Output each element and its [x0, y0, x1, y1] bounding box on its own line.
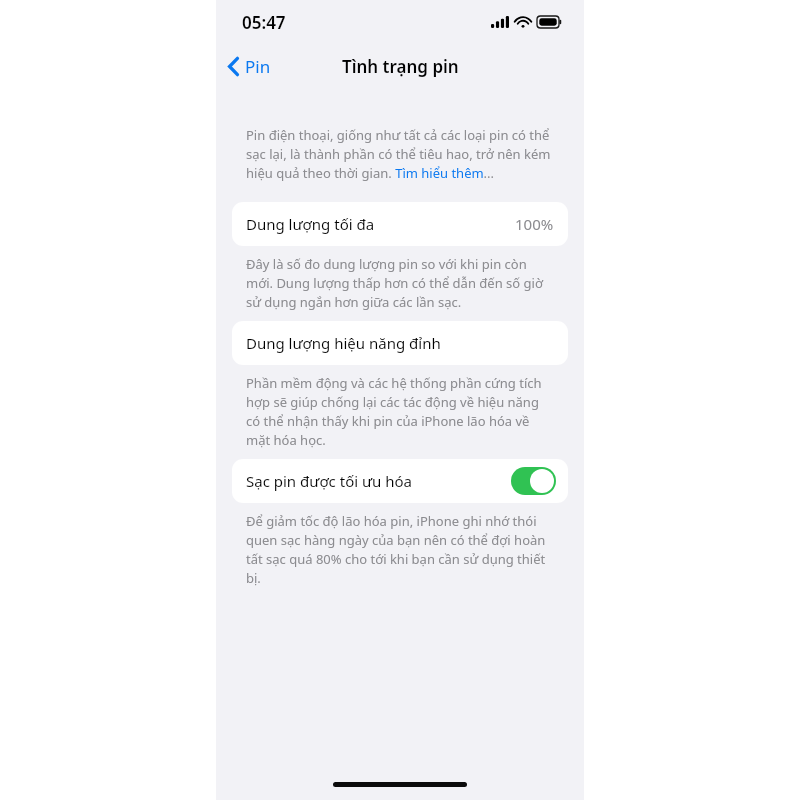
- staticText: 100%: [515, 214, 554, 234]
- staticText: Sạc pin được tối ưu hóa: [246, 471, 413, 491]
- button[interactable]: Sạc pin được tối ưu hóa: [232, 459, 568, 503]
- staticText: 05:47: [242, 11, 286, 34]
- button[interactable]: Dung lượng tối đa: [232, 202, 568, 246]
- staticText: Đây là số đo dung lượng pin so với khi p…: [246, 255, 554, 311]
- staticText: Dung lượng hiệu năng đỉnh: [246, 333, 441, 353]
- button[interactable]: Dung lượng hiệu năng đỉnh: [232, 321, 568, 365]
- staticText: Phần mềm động và các hệ thống phần cứng …: [246, 374, 554, 449]
- staticText: Pin điện thoại, giống như tất cả các loạ…: [246, 126, 554, 182]
- staticText: Dung lượng tối đa: [246, 214, 375, 234]
- button[interactable]: Sạc pin được tối ưu hóa: [511, 467, 556, 495]
- staticText: Để giảm tốc độ lão hóa pin, iPhone ghi n…: [246, 512, 554, 587]
- button[interactable]: Pin: [216, 49, 281, 84]
- staticText: Pin: [245, 55, 271, 78]
- staticText: Tình trạng pin: [342, 55, 459, 78]
